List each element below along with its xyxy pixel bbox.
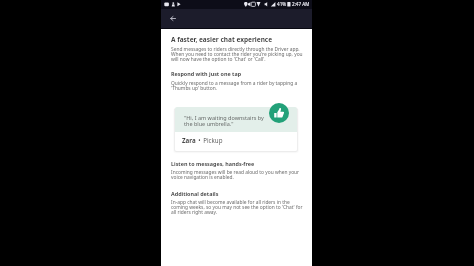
button[interactable]: Back [166,12,179,25]
button[interactable]: "Hi, I am waiting downstairs by the blue… [175,107,297,151]
staticText: In-app chat will become available for al… [171,199,304,216]
staticText: Additional details [171,190,219,197]
staticText: 41% [277,1,287,7]
staticText: Zara • Pickup [182,136,223,144]
staticText: Respond with just one tap [171,70,242,77]
staticText: Send messages to riders directly through… [171,46,304,63]
staticText: Quickly respond to a message from a ride… [171,80,304,92]
staticText: A faster, easier chat experience [171,35,273,44]
staticText: Listen to messages, hands-free [171,160,255,167]
button[interactable]: Thumbs up [269,103,289,123]
staticText: Incoming messages will be read aloud to … [171,169,304,181]
staticText: "Hi, I am waiting downstairs by the blue… [184,114,264,127]
staticText: 2:47 AM [292,1,310,7]
